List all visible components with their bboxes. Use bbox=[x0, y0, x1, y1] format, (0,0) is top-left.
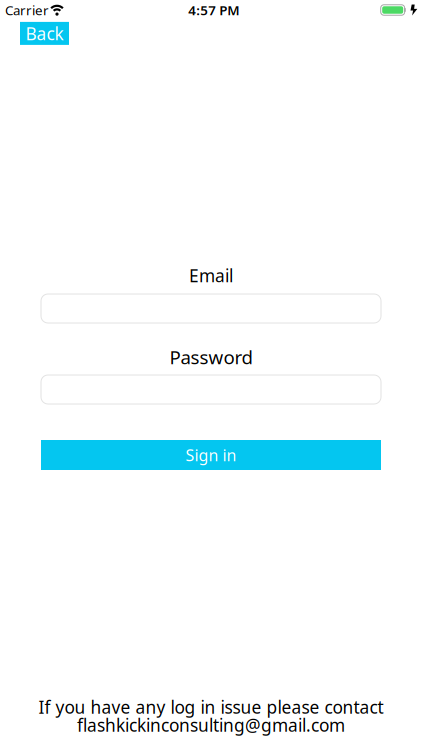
staticText: If you have any log in issue please cont… bbox=[38, 695, 383, 718]
button[interactable]: Back bbox=[20, 22, 69, 45]
button[interactable]: Password text field bbox=[41, 375, 381, 404]
staticText: Sign in bbox=[185, 444, 236, 466]
button[interactable]: Sign in bbox=[41, 440, 381, 470]
button[interactable]: Email text field bbox=[41, 294, 381, 323]
staticText: Password bbox=[169, 345, 252, 369]
staticText: 4:57 PM bbox=[188, 1, 239, 19]
staticText: Email bbox=[189, 264, 233, 287]
staticText: flashkickinconsulting@gmail.com bbox=[77, 713, 345, 736]
staticText: Back bbox=[25, 22, 63, 45]
staticText: Carrier bbox=[5, 1, 49, 19]
